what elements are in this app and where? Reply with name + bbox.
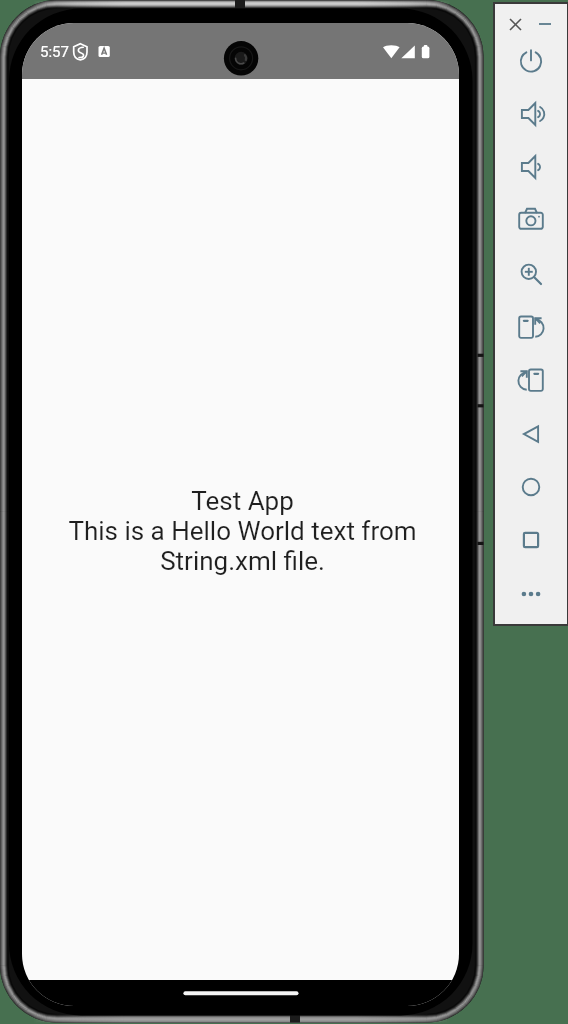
button[interactable]: Minimize [533,12,557,36]
button[interactable]: Back [507,411,555,457]
staticText: Test App This is a Hello World text from… [43,486,442,576]
staticText: 5:57 [40,43,69,61]
button[interactable]: Close [503,12,527,36]
button[interactable]: Home [507,464,555,510]
button[interactable]: Zoom [507,251,555,297]
button[interactable]: Rotate right [507,357,555,403]
button[interactable]: Rotate left [507,304,555,350]
button[interactable]: Volume down [507,144,555,190]
button[interactable]: Volume up [507,91,555,137]
button[interactable]: Take screenshot [507,197,555,243]
button[interactable]: More [507,571,555,617]
button[interactable]: Power [507,38,555,84]
button[interactable]: Overview [507,517,555,563]
